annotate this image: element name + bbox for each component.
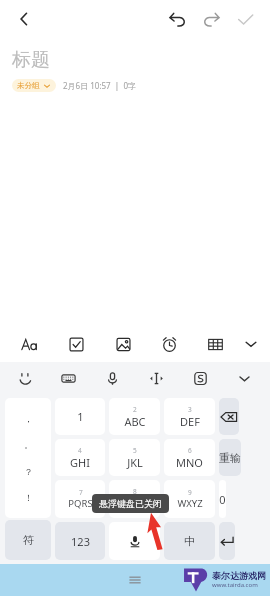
button[interactable]: Checklist bbox=[53, 326, 100, 362]
staticText: 5 bbox=[133, 446, 137, 455]
staticText: 3 bbox=[188, 405, 192, 414]
staticText: 0 bbox=[219, 492, 226, 507]
staticText: ABC bbox=[124, 414, 146, 429]
staticText: ， bbox=[24, 413, 33, 424]
staticText: WXYZ bbox=[177, 497, 203, 510]
staticText: 重输 bbox=[219, 451, 241, 465]
button[interactable]: Cursor bbox=[134, 362, 178, 394]
button[interactable]: Delete bbox=[219, 398, 239, 435]
staticText: 2 bbox=[133, 405, 137, 414]
staticText: 符 bbox=[23, 533, 34, 547]
staticText: 泰尔达游戏网 bbox=[212, 570, 266, 581]
staticText: 1 bbox=[77, 409, 84, 424]
staticText: TUV bbox=[124, 496, 145, 511]
button[interactable]: Sogou bbox=[178, 362, 222, 394]
button[interactable]: 符 bbox=[5, 520, 51, 560]
button[interactable]: 123 bbox=[55, 522, 105, 560]
button[interactable]: Recent apps bbox=[120, 565, 150, 595]
staticText: 9 bbox=[188, 488, 192, 497]
staticText: ？ bbox=[24, 466, 33, 477]
button[interactable]: Image bbox=[100, 326, 146, 362]
button[interactable]: 1 bbox=[55, 398, 105, 435]
staticText: 6 bbox=[188, 446, 192, 455]
staticText: 7 bbox=[79, 488, 83, 497]
staticText: 悬浮键盘已关闭 bbox=[99, 498, 162, 509]
staticText: GHI bbox=[70, 455, 90, 470]
staticText: MNO bbox=[176, 455, 203, 470]
button[interactable]: Redo bbox=[194, 2, 228, 36]
staticText: JKL bbox=[127, 455, 143, 470]
button[interactable]: 9 bbox=[164, 480, 215, 518]
button[interactable]: 4 bbox=[55, 439, 105, 476]
button[interactable]: 未分组 bbox=[12, 79, 56, 92]
staticText: PQRS bbox=[68, 497, 93, 510]
button[interactable]: 3 bbox=[164, 398, 215, 435]
button[interactable]: Back bbox=[6, 1, 42, 37]
staticText: 。 bbox=[24, 439, 33, 450]
staticText: DEF bbox=[180, 414, 200, 429]
button[interactable]: 重输 bbox=[219, 439, 241, 476]
button[interactable]: 中 bbox=[164, 522, 215, 560]
staticText: 标题 bbox=[12, 48, 50, 72]
button[interactable]: 0 bbox=[219, 480, 226, 518]
button[interactable]: 8 bbox=[109, 480, 160, 518]
button[interactable]: Undo bbox=[160, 2, 194, 36]
button[interactable]: Voice input bbox=[109, 522, 160, 560]
button[interactable]: Table bbox=[192, 326, 238, 362]
button[interactable]: Hide keyboard bbox=[222, 362, 266, 394]
staticText: 123 bbox=[71, 534, 90, 549]
staticText: 2月6日 10:57 | 0字 bbox=[63, 80, 136, 91]
button[interactable]: More bbox=[238, 326, 264, 362]
staticText: 4 bbox=[78, 446, 82, 455]
button[interactable]: 6 bbox=[164, 439, 215, 476]
staticText: 未分组 bbox=[17, 81, 40, 90]
button[interactable]: Save bbox=[228, 2, 262, 36]
button[interactable]: 7 bbox=[55, 480, 105, 518]
button[interactable]: Emoji bbox=[4, 362, 47, 394]
button[interactable]: ， bbox=[5, 398, 51, 518]
button[interactable]: Reminder bbox=[146, 326, 192, 362]
staticText: www.tairda.com bbox=[212, 581, 258, 589]
staticText: ！ bbox=[24, 492, 33, 503]
button[interactable]: Enter bbox=[219, 522, 235, 560]
staticText: 8 bbox=[133, 487, 137, 496]
button[interactable]: Text style bbox=[6, 326, 53, 362]
button[interactable]: 5 bbox=[109, 439, 160, 476]
button[interactable]: 2 bbox=[109, 398, 160, 435]
button[interactable]: Voice input bbox=[90, 362, 134, 394]
button[interactable]: Keyboard layout bbox=[47, 362, 90, 394]
staticText: 中 bbox=[184, 534, 195, 548]
